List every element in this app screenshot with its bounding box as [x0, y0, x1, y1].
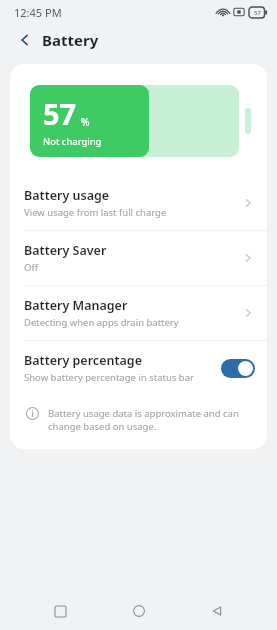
button[interactable]: Battery percentage [10, 341, 267, 395]
staticText: 57 [43, 94, 77, 133]
staticText: Battery [42, 30, 99, 50]
staticText: Battery Saver [24, 242, 107, 259]
staticText: View usage from last full charge [24, 206, 167, 219]
button[interactable]: Back [12, 27, 38, 53]
staticText: % [81, 115, 90, 129]
button[interactable]: Home [121, 593, 157, 629]
staticText: Battery Manager [24, 297, 128, 314]
staticText: 12:45 PM [14, 5, 62, 20]
button[interactable]: Battery Manager [10, 286, 267, 340]
staticText: Not charging [43, 135, 102, 148]
button[interactable]: Battery usage [10, 176, 267, 230]
staticText: 57 [254, 9, 261, 17]
staticText: Show battery percentage in status bar [24, 371, 194, 384]
staticText: Battery percentage [24, 352, 142, 369]
button[interactable]: Battery Saver [10, 231, 267, 285]
staticText: Detecting when apps drain battery [24, 316, 179, 329]
button[interactable]: Recents [42, 593, 78, 629]
staticText: Battery usage [24, 187, 110, 204]
button[interactable]: Back [199, 593, 235, 629]
staticText: Battery usage data is approximate and ca… [48, 407, 251, 433]
staticText: Off [24, 261, 38, 274]
